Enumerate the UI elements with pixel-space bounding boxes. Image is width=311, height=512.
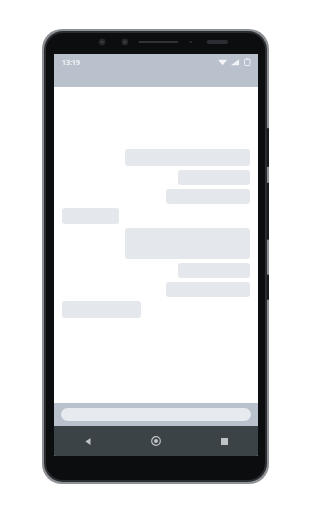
button[interactable]: Back (54, 426, 122, 456)
button[interactable]: Recent apps (190, 426, 258, 456)
staticText: 13:19 (62, 58, 80, 68)
button[interactable]: Home (122, 426, 190, 456)
button[interactable] (61, 408, 251, 421)
